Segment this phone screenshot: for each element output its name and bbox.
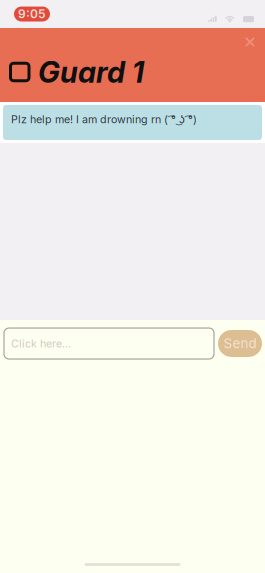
staticText: Guard 1 [38,54,144,90]
button[interactable]: Click here... [4,328,214,359]
button[interactable]: Close [240,32,260,52]
staticText: Send [223,335,256,351]
button[interactable]: Send [218,330,262,357]
staticText: Plz help me! I am drowning rn ( ͡° ͜ʖ ͡°… [11,113,197,126]
staticText: Click here... [11,337,71,350]
staticText: 9:05 [18,7,46,21]
